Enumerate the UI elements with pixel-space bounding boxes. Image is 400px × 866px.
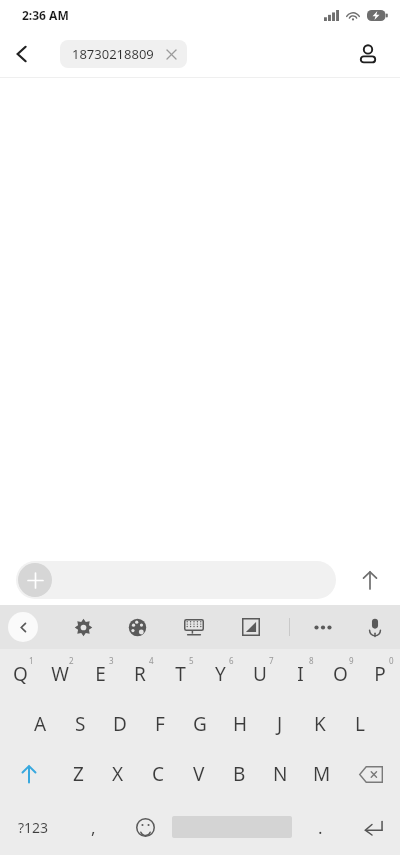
staticText: 5 bbox=[189, 655, 194, 666]
button[interactable]: N bbox=[260, 749, 301, 799]
button[interactable]: 18730218809 bbox=[60, 40, 187, 68]
staticText: Z bbox=[73, 761, 84, 787]
button[interactable]: . bbox=[294, 799, 346, 855]
staticText: 9 bbox=[349, 655, 354, 666]
staticText: , bbox=[91, 816, 96, 839]
staticText: 3 bbox=[109, 655, 114, 666]
button[interactable]: T bbox=[160, 649, 200, 699]
button[interactable]: A bbox=[20, 699, 60, 749]
button[interactable]: Backspace bbox=[342, 749, 400, 799]
button[interactable]: Space bbox=[170, 799, 294, 855]
staticText: N bbox=[273, 761, 288, 787]
button[interactable]: Q bbox=[0, 649, 40, 699]
staticText: G bbox=[193, 711, 207, 737]
button[interactable]: O bbox=[320, 649, 360, 699]
staticText: M bbox=[313, 761, 331, 787]
staticText: 18730218809 bbox=[72, 45, 154, 63]
button[interactable]: Enter bbox=[346, 799, 400, 855]
staticText: Q bbox=[13, 661, 28, 687]
staticText: 7 bbox=[269, 655, 274, 666]
staticText: R bbox=[134, 661, 146, 687]
staticText: E bbox=[95, 661, 106, 687]
button[interactable]: Add attachment bbox=[18, 563, 52, 597]
staticText: 2:36 AM bbox=[22, 7, 69, 23]
button[interactable]: Send bbox=[348, 558, 392, 602]
button[interactable]: Back bbox=[0, 32, 44, 76]
button[interactable]: U bbox=[240, 649, 280, 699]
button[interactable]: ?123 bbox=[0, 799, 66, 855]
staticText: T bbox=[175, 661, 186, 687]
staticText: V bbox=[193, 761, 205, 787]
staticText: L bbox=[355, 711, 365, 737]
staticText: 8 bbox=[309, 655, 314, 666]
button[interactable]: More options bbox=[306, 610, 340, 644]
button[interactable]: G bbox=[180, 699, 220, 749]
staticText: K bbox=[314, 711, 326, 737]
staticText: 2 bbox=[69, 655, 74, 666]
staticText: W bbox=[51, 661, 69, 687]
staticText: O bbox=[333, 661, 348, 687]
staticText: I bbox=[297, 661, 304, 687]
button[interactable]: Resize keyboard bbox=[234, 610, 268, 644]
staticText: U bbox=[253, 661, 267, 687]
button[interactable]: E bbox=[80, 649, 120, 699]
button[interactable]: , bbox=[66, 799, 120, 855]
button[interactable]: R bbox=[120, 649, 160, 699]
staticText: A bbox=[34, 711, 47, 737]
button[interactable]: K bbox=[300, 699, 340, 749]
staticText: X bbox=[112, 761, 124, 787]
button[interactable]: Remove recipient bbox=[163, 46, 179, 62]
button[interactable]: Keyboard layout bbox=[177, 610, 211, 644]
button[interactable]: J bbox=[260, 699, 300, 749]
button[interactable]: Collapse toolbar bbox=[8, 612, 38, 642]
button[interactable]: Emoji bbox=[120, 799, 170, 855]
button[interactable]: H bbox=[220, 699, 260, 749]
staticText: P bbox=[374, 661, 386, 687]
button[interactable]: Settings bbox=[66, 610, 100, 644]
button[interactable]: C bbox=[138, 749, 178, 799]
button[interactable]: L bbox=[340, 699, 380, 749]
button[interactable]: I bbox=[280, 649, 320, 699]
button[interactable]: X bbox=[98, 749, 138, 799]
button[interactable]: W bbox=[40, 649, 80, 699]
staticText: 6 bbox=[229, 655, 234, 666]
button[interactable]: Shift bbox=[0, 749, 58, 799]
button[interactable]: D bbox=[100, 699, 140, 749]
button[interactable]: V bbox=[178, 749, 219, 799]
staticText: . bbox=[318, 816, 323, 839]
staticText: Y bbox=[215, 661, 226, 687]
button[interactable]: Add attachment bbox=[16, 561, 336, 599]
staticText: B bbox=[233, 761, 246, 787]
button[interactable]: M bbox=[301, 749, 342, 799]
staticText: F bbox=[155, 711, 165, 737]
button[interactable]: Contacts bbox=[348, 34, 388, 74]
button[interactable]: S bbox=[60, 699, 100, 749]
button[interactable]: B bbox=[219, 749, 260, 799]
button[interactable]: P bbox=[360, 649, 400, 699]
staticText: D bbox=[113, 711, 127, 737]
staticText: C bbox=[152, 761, 165, 787]
button[interactable]: Z bbox=[58, 749, 98, 799]
staticText: J bbox=[277, 711, 283, 737]
button[interactable]: Voice input bbox=[358, 610, 392, 644]
staticText: H bbox=[233, 711, 248, 737]
button[interactable]: Y bbox=[200, 649, 240, 699]
staticText: 0 bbox=[389, 655, 394, 666]
staticText: ?123 bbox=[18, 818, 49, 837]
button[interactable]: Theme bbox=[120, 610, 154, 644]
staticText: 4 bbox=[149, 655, 154, 666]
staticText: 1 bbox=[29, 655, 34, 666]
button[interactable]: F bbox=[140, 699, 180, 749]
staticText: S bbox=[75, 711, 86, 737]
